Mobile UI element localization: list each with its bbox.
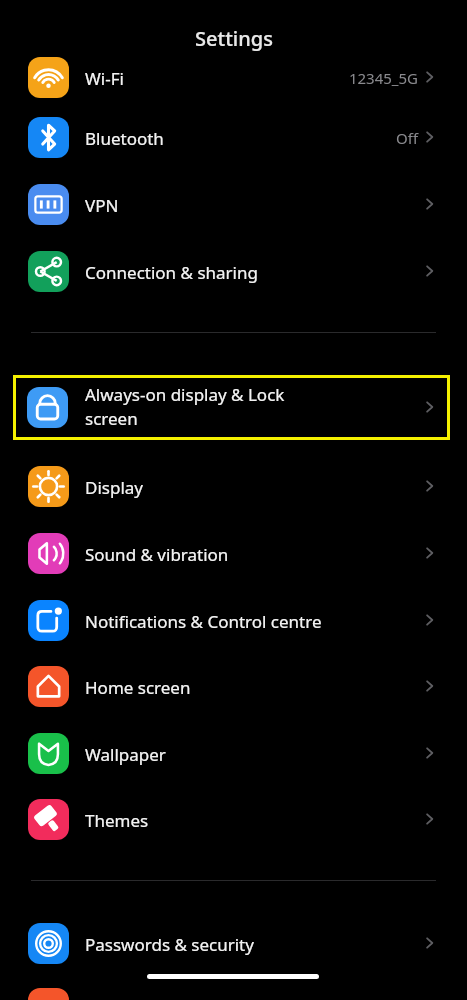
button[interactable]: Wi-Fi [0,47,467,92]
staticText: Settings [195,25,273,52]
staticText: Bluetooth [85,127,164,150]
button[interactable]: Passwords & security [0,911,467,976]
button[interactable]: Always-on display & Lock screen [13,375,450,440]
button[interactable]: Home screen [0,654,467,719]
button[interactable]: VPN [0,172,467,237]
staticText: Home screen [85,676,191,699]
button[interactable]: Wallpaper [0,721,467,786]
staticText: Themes [85,809,149,832]
staticText: Passwords & security [85,933,254,956]
staticText: VPN [85,194,119,217]
button[interactable]: Themes [0,787,467,852]
button[interactable]: Display [0,454,467,519]
staticText: Notifications & Control centre [85,610,322,633]
staticText: Connection & sharing [85,261,258,284]
staticText: Display [85,476,143,499]
button[interactable]: Sound & vibration [0,521,467,586]
button[interactable]: Bluetooth [0,105,467,170]
staticText: Off [300,128,418,148]
button[interactable]: Notifications & Control centre [0,588,467,653]
staticText: 12345_5G [300,68,418,88]
staticText: Sound & vibration [85,543,229,566]
staticText: Wi-Fi [85,67,124,90]
staticText: Always-on display & Lock screen [85,383,385,430]
staticText: Wallpaper [85,743,166,766]
button[interactable]: Connection & sharing [0,239,467,304]
